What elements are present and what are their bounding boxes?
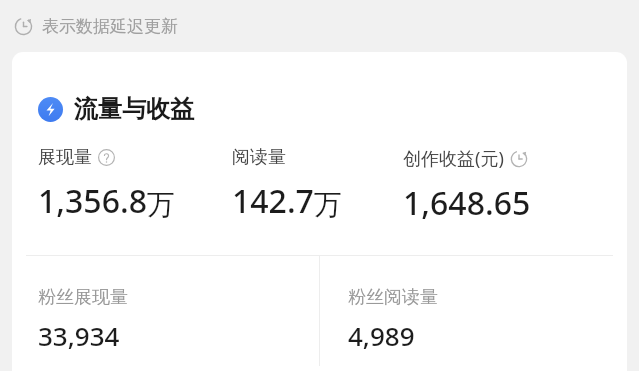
staticText: 4,989 [348,318,415,353]
button[interactable]: 粉丝展现量 [38,286,319,353]
button[interactable]: 创作收益(元) [403,146,609,225]
staticText: 表示数据延迟更新 [42,16,178,37]
other: 说明 [98,149,115,166]
staticText: 展现量 [38,146,92,169]
other: 说明 [510,150,528,168]
button[interactable]: 阅读量 [232,146,403,223]
button[interactable]: 粉丝阅读量 [348,286,627,353]
staticText: 1,356.8 [38,179,147,223]
staticText: 流量与收益 [74,94,194,124]
button[interactable]: 展现量 [38,146,232,223]
staticText: 阅读量 [232,146,286,169]
staticText: 创作收益(元) [403,146,504,171]
staticText: 粉丝阅读量 [348,286,438,309]
staticText: 142.7 [232,179,314,223]
staticText: 粉丝展现量 [38,286,128,309]
button[interactable]: 流量与收益 [38,94,627,124]
staticText: 1,648.65 [403,181,531,225]
staticText: 33,934 [38,318,120,353]
staticText: 万 [314,187,342,222]
staticText: 万 [147,187,175,222]
